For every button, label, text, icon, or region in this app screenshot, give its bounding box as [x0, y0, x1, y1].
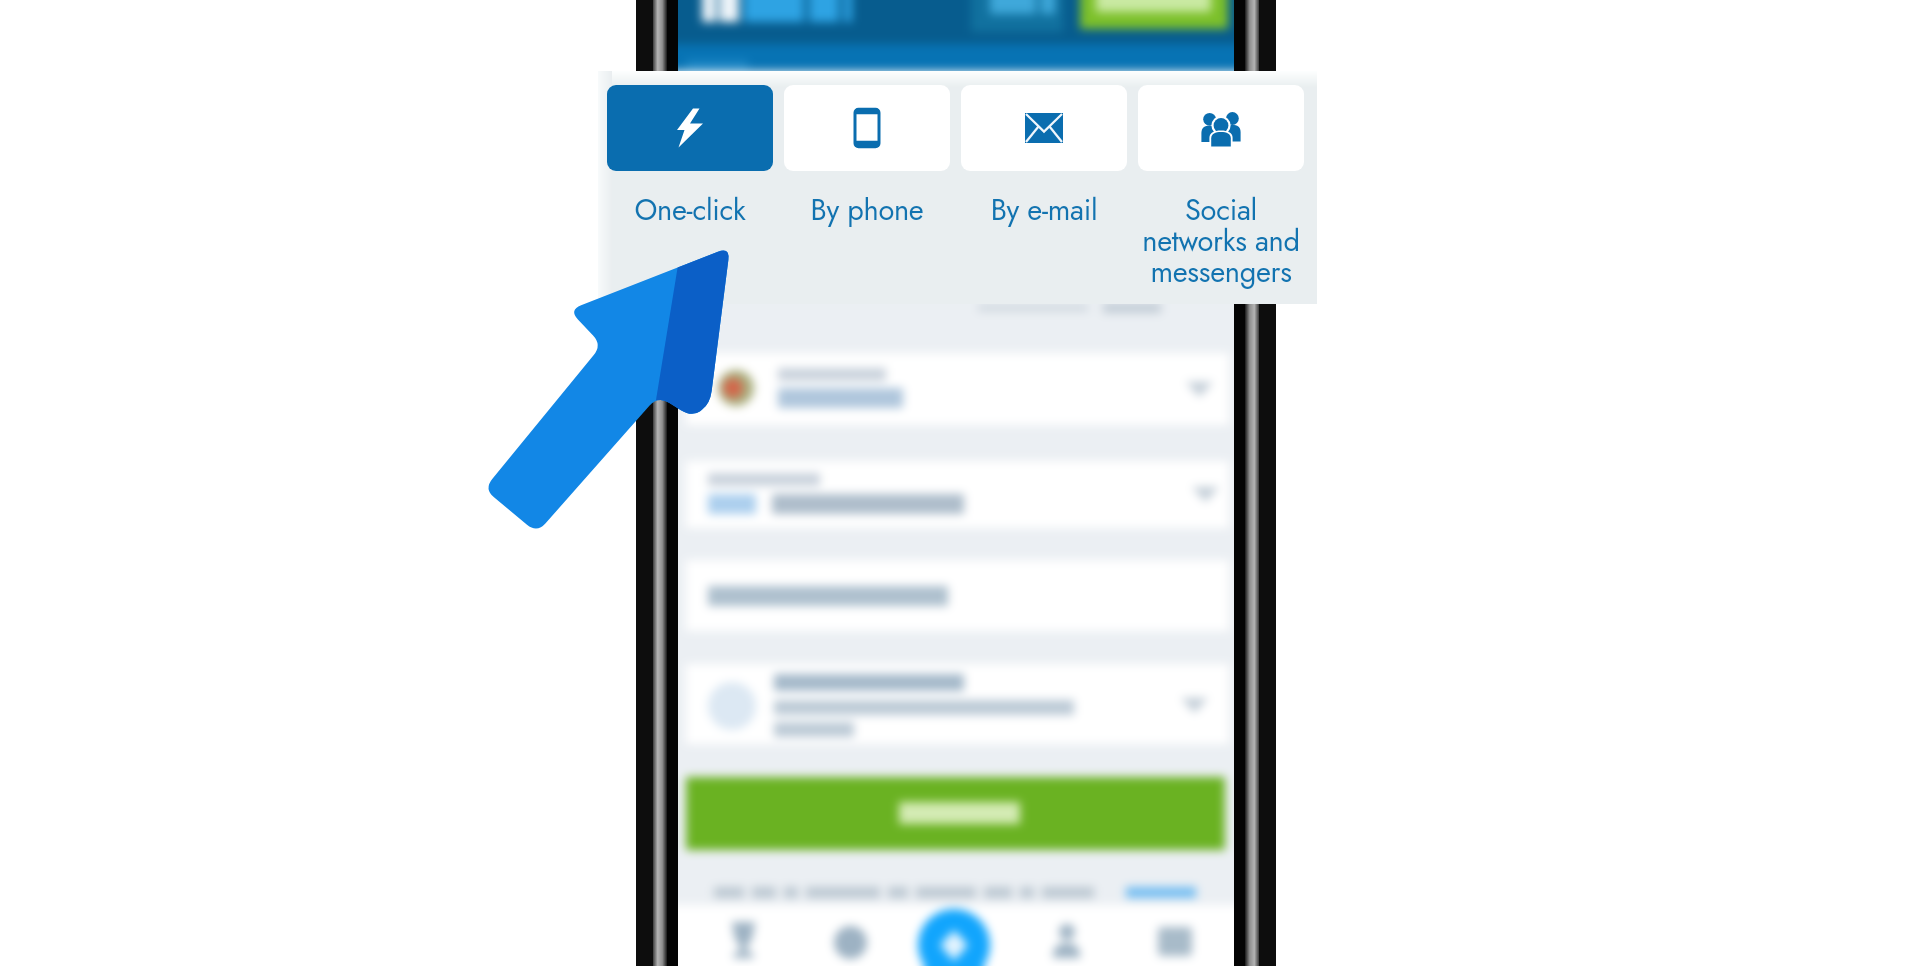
other: Pointer: [0, 0, 1916, 966]
button[interactable]: Register by e-mail: [961, 85, 1127, 286]
staticText: Social networks and messengers: [1091, 189, 1351, 293]
button[interactable]: One-click registration: [607, 85, 773, 286]
button[interactable]: Register with social networks and messen…: [1138, 85, 1304, 286]
staticText: By e-mail: [914, 189, 1174, 231]
staticText: By phone: [737, 189, 997, 231]
button[interactable]: Register by phone: [784, 85, 950, 286]
staticText: One-click: [560, 189, 820, 231]
